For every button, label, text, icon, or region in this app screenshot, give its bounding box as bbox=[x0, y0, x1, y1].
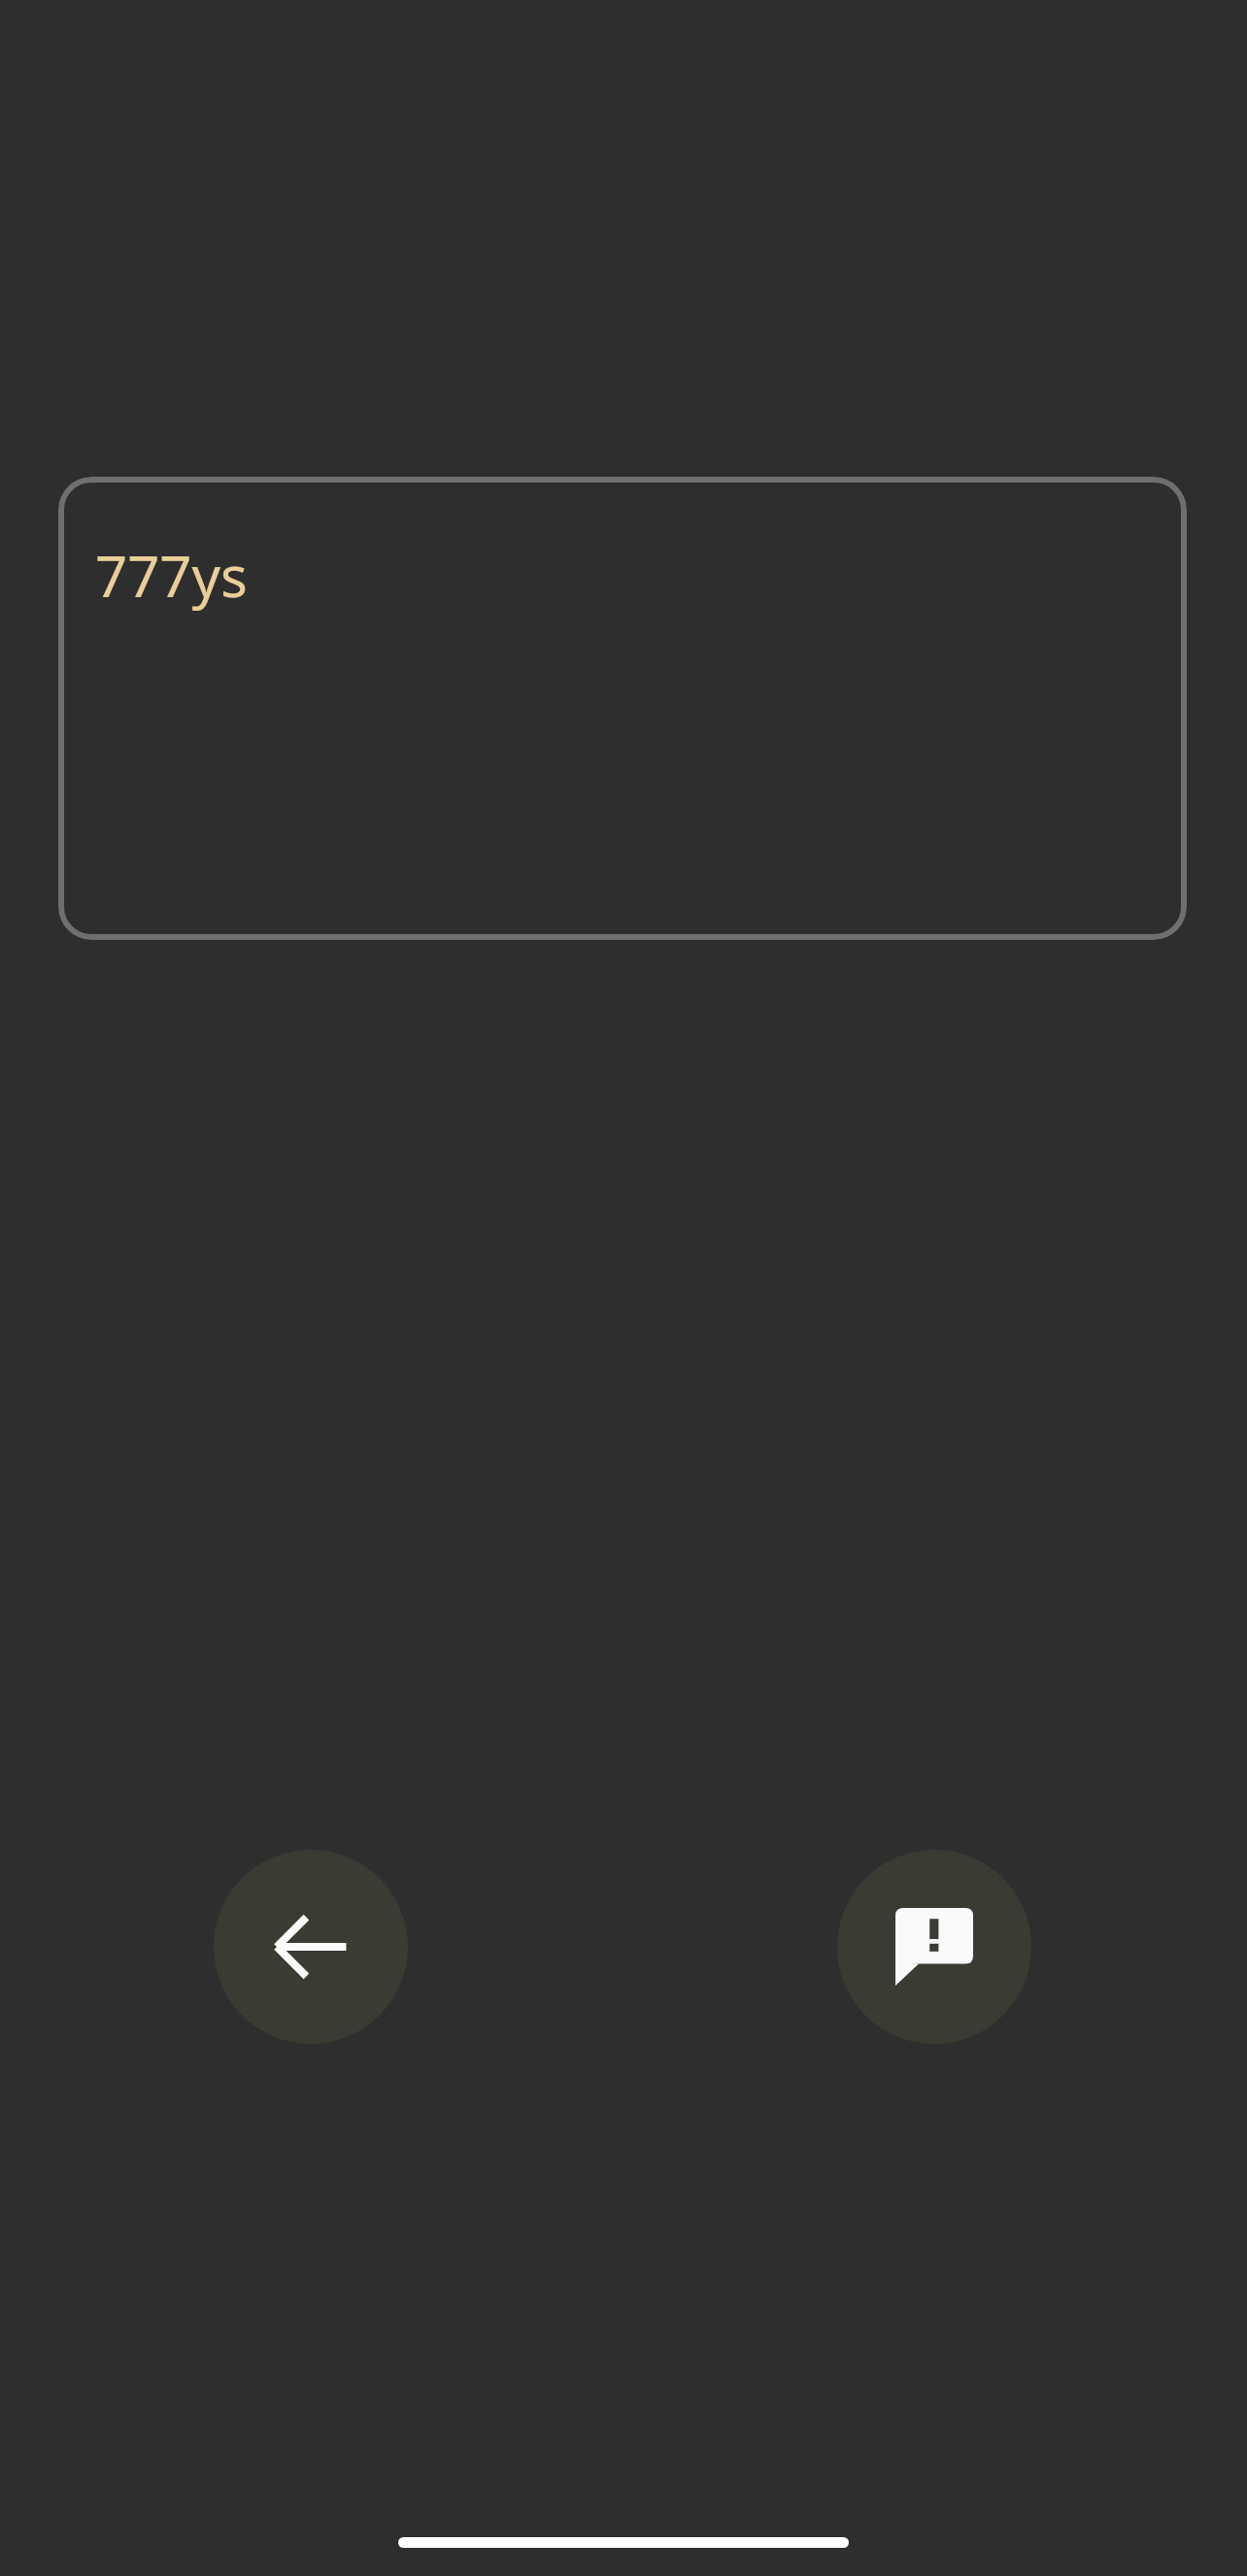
staticText: 777ys bbox=[95, 537, 248, 614]
button[interactable]: 777ys bbox=[58, 477, 1187, 940]
button[interactable]: Back bbox=[214, 1850, 408, 2044]
button[interactable]: Feedback bbox=[837, 1850, 1031, 2044]
